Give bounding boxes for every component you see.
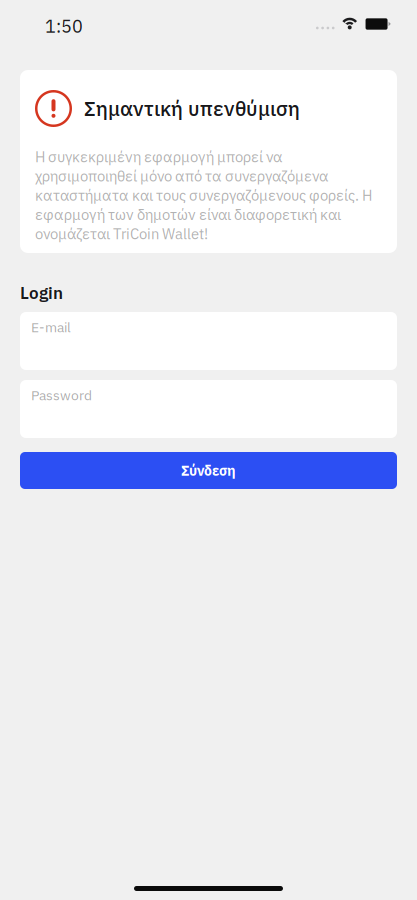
staticText: Password xyxy=(31,386,92,404)
staticText: Login xyxy=(20,281,63,304)
button[interactable]: E-mail xyxy=(20,312,397,370)
staticText: 1:50 xyxy=(45,14,83,38)
button[interactable]: Σύνδεση xyxy=(20,452,397,489)
staticText: Σύνδεση xyxy=(181,461,236,480)
staticText: Σημαντική υπενθύμιση xyxy=(84,95,300,122)
button[interactable]: Password xyxy=(20,380,397,438)
staticText: E-mail xyxy=(31,318,71,336)
staticText: Η συγκεκριμένη εφαρμογή μπορεί να χρησιμ… xyxy=(35,147,372,243)
